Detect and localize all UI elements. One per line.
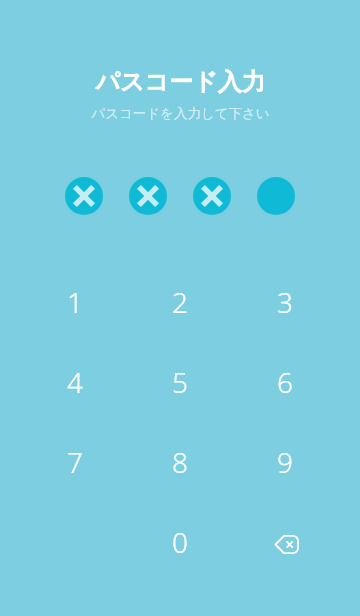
staticText: 3 [277,283,293,321]
button[interactable]: 3 [245,269,325,335]
button[interactable]: 6 [245,349,325,415]
staticText: 2 [172,283,188,321]
button[interactable]: 5 [140,349,220,415]
staticText: 9 [277,443,293,481]
staticText: 6 [277,363,293,401]
staticText: 1 [67,283,83,321]
button[interactable]: 7 [35,429,115,495]
button[interactable]: Backspace [246,511,326,577]
button[interactable]: 8 [140,429,220,495]
staticText: パスコードを入力して下さい [91,105,270,122]
button[interactable]: 0 [140,509,220,575]
staticText: 7 [67,443,83,481]
staticText: 0 [172,523,188,561]
staticText: 4 [67,363,83,401]
button[interactable]: 1 [35,269,115,335]
button[interactable]: 9 [245,429,325,495]
button[interactable]: 2 [140,269,220,335]
staticText: 5 [172,363,188,401]
staticText: 8 [172,443,188,481]
button[interactable]: 4 [35,349,115,415]
staticText: パスコード入力 [95,67,266,97]
